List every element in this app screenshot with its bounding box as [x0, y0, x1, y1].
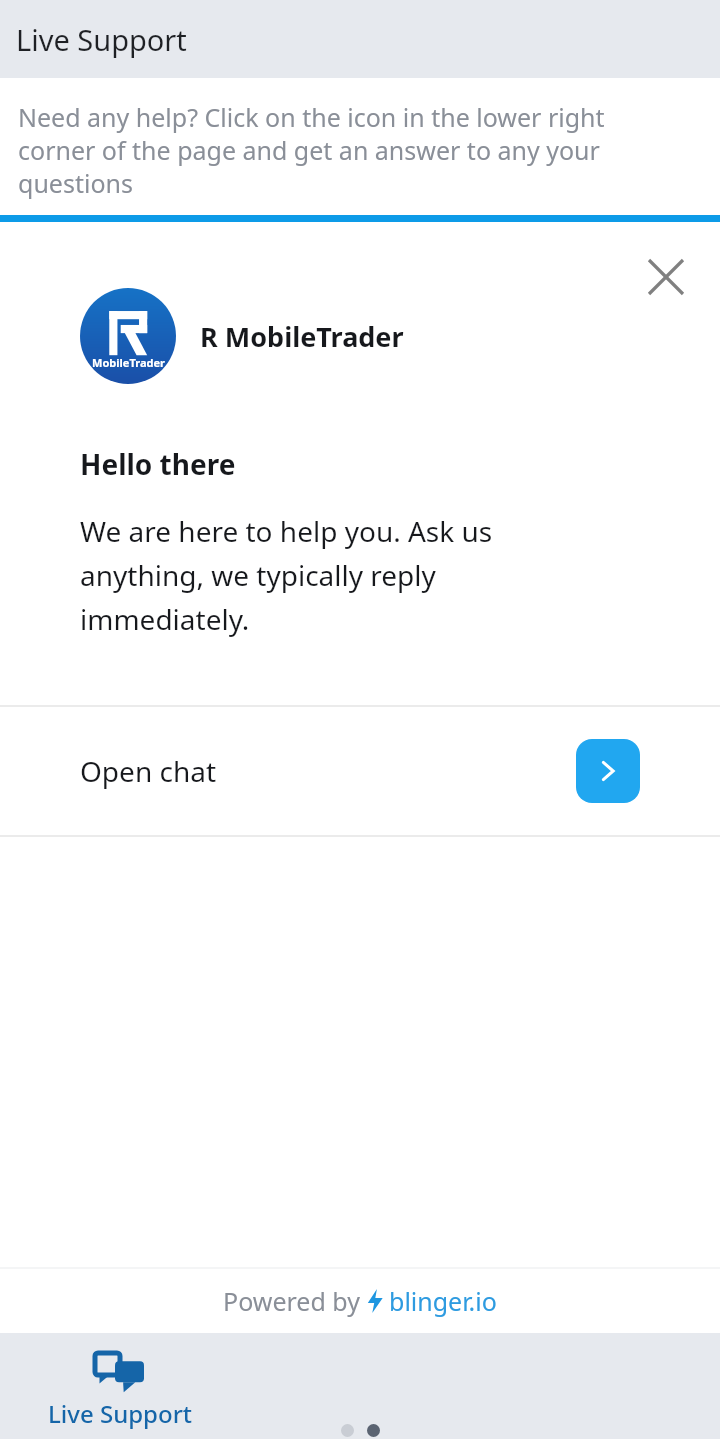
staticText: We are here to help you. Ask us anything…: [80, 512, 560, 638]
staticText: MobileTrader: [92, 355, 165, 370]
staticText: Need any help? Click on the icon in the …: [18, 100, 642, 200]
button[interactable]: Open chat: [576, 739, 640, 803]
button[interactable]: blinger.io: [389, 1284, 497, 1318]
staticText: Powered by: [223, 1284, 367, 1318]
button[interactable]: Close: [640, 251, 692, 303]
staticText: Live Support: [48, 1397, 192, 1430]
staticText: Live Support: [16, 20, 187, 59]
staticText: R MobileTrader: [200, 318, 404, 355]
button[interactable]: Live Support: [42, 1347, 198, 1436]
button[interactable]: Open chat: [0, 707, 720, 835]
staticText: Open chat: [80, 752, 217, 790]
staticText: Hello there: [80, 445, 236, 483]
